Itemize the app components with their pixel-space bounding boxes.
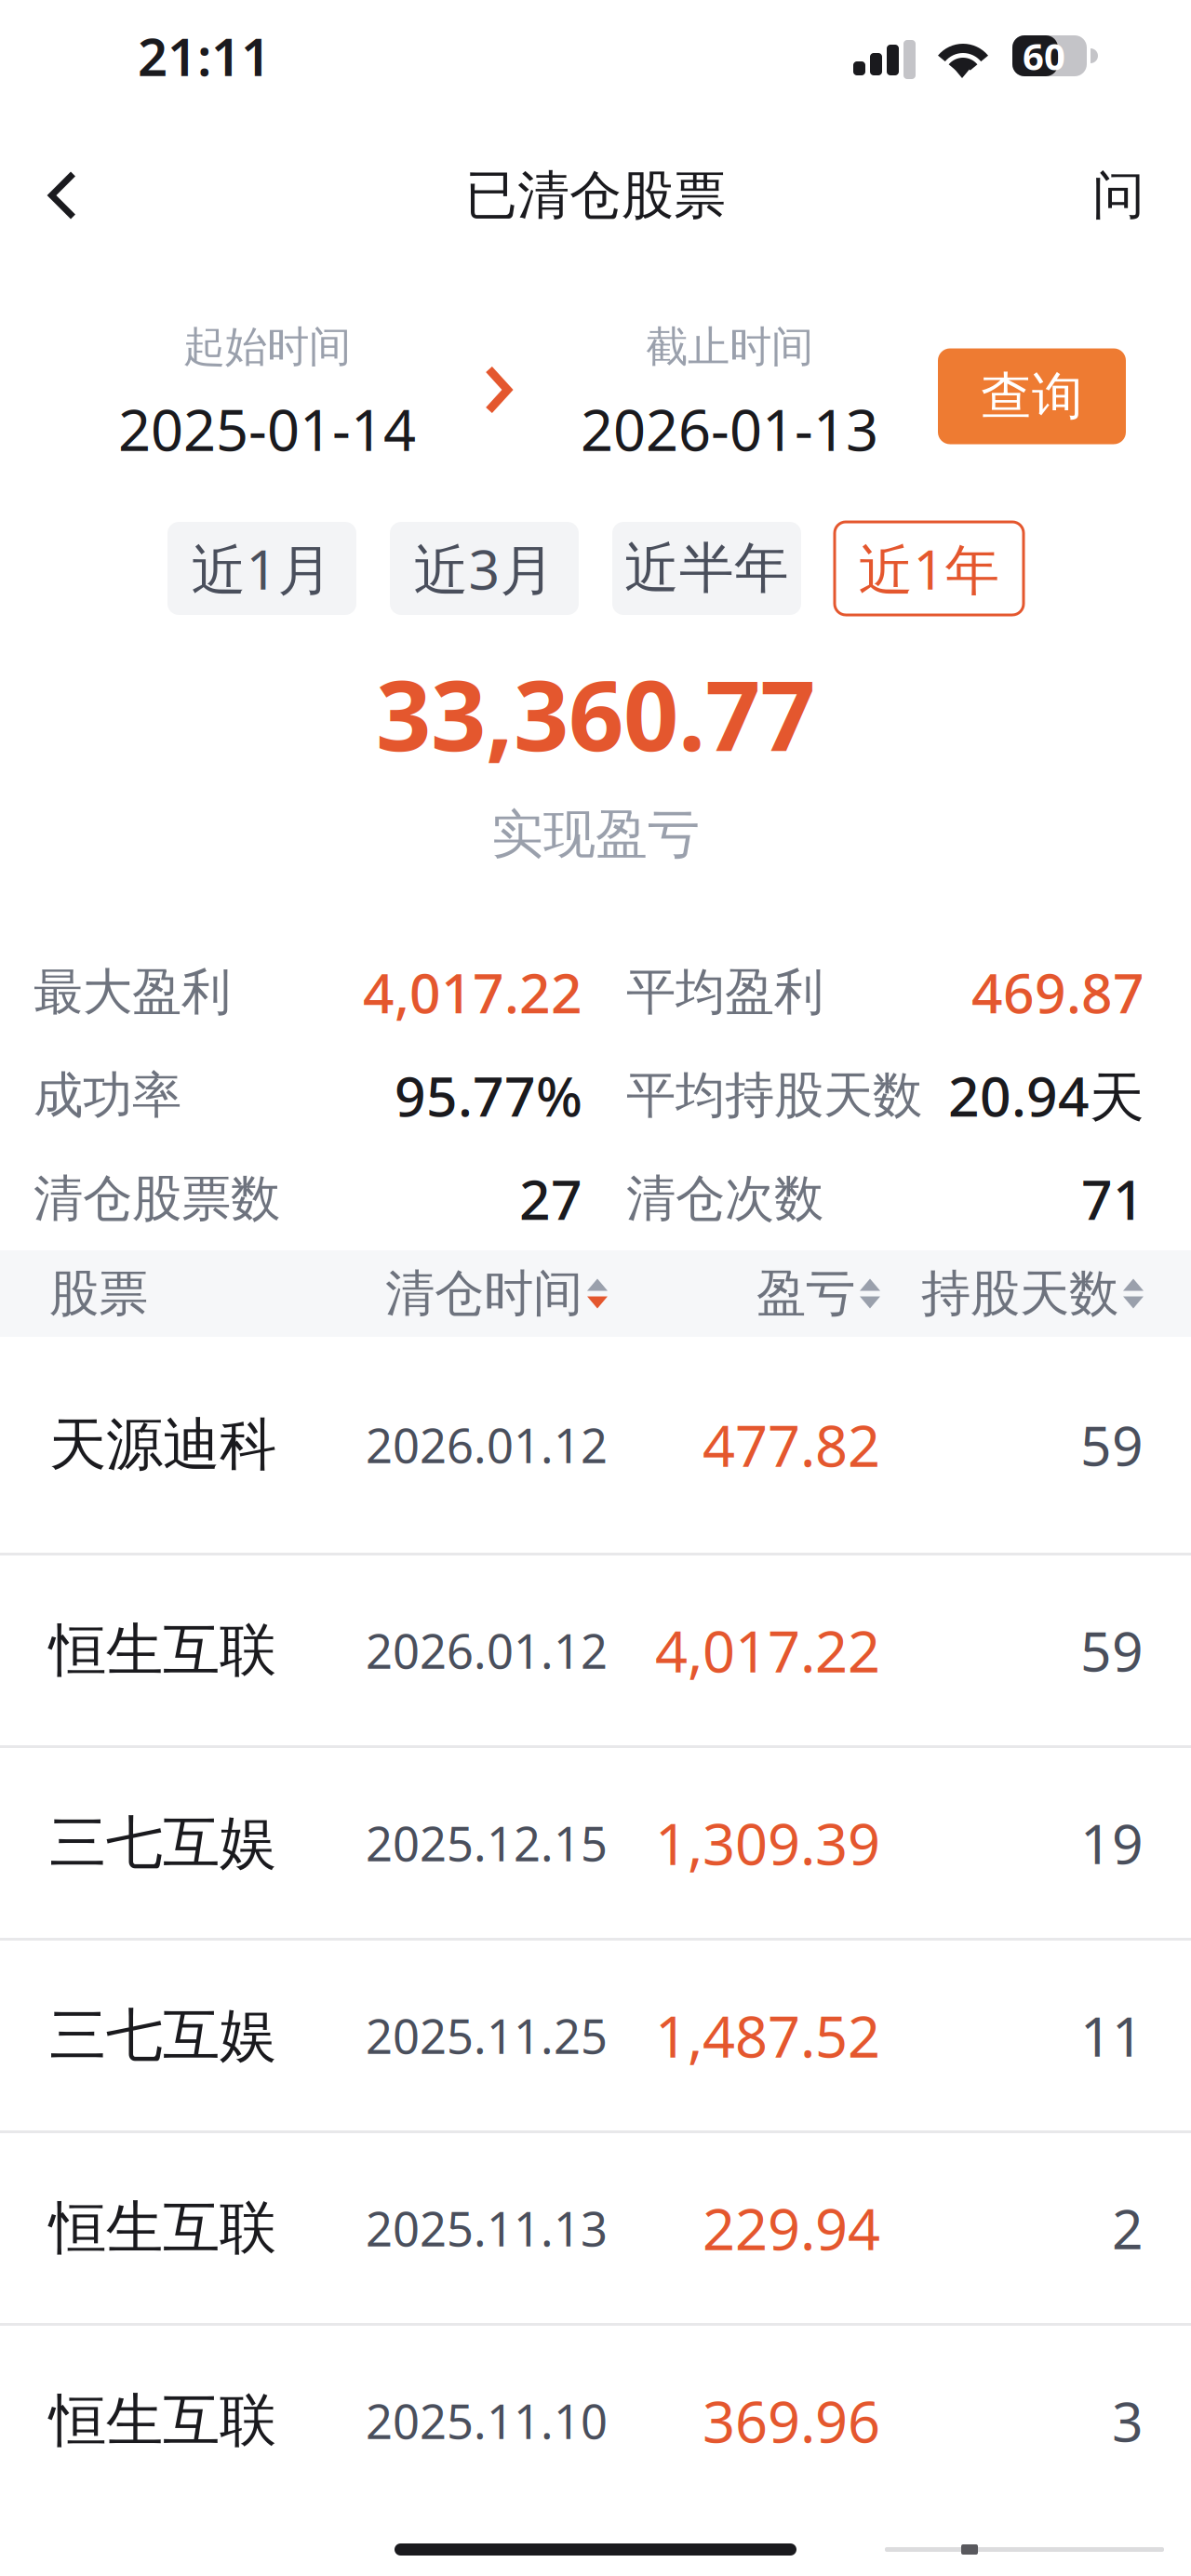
staticText: 33,360.77	[376, 649, 815, 778]
staticText: 问	[1092, 163, 1144, 227]
staticText: 59	[1080, 1408, 1144, 1481]
staticText: 清仓股票数	[33, 1168, 280, 1229]
staticText: 2026.01.12	[366, 1413, 608, 1476]
staticText: 最大盈利	[33, 962, 231, 1023]
button[interactable]: 问	[1067, 144, 1170, 247]
staticText: 平均盈利	[626, 962, 823, 1023]
button[interactable]: 截止时间	[571, 325, 888, 455]
button[interactable]: 返回	[11, 144, 114, 247]
staticText: 实现盈亏	[491, 802, 700, 866]
staticText: 持股天数	[921, 1263, 1118, 1324]
staticText: 27	[519, 1162, 582, 1235]
button[interactable]: 近3月	[390, 522, 579, 615]
button[interactable]: 三七互娱	[0, 1748, 1191, 1938]
staticText: 4,017.22	[655, 1612, 880, 1688]
button[interactable]: 近1月	[167, 522, 356, 615]
staticText: 469.87	[971, 956, 1144, 1028]
staticText: 3	[1112, 2384, 1144, 2457]
staticText: 21:11	[138, 21, 271, 90]
staticText: 已清仓股票	[465, 163, 726, 227]
staticText: 近半年	[624, 535, 789, 602]
staticText: 清仓时间	[385, 1263, 582, 1324]
staticText: 2	[1112, 2192, 1144, 2264]
staticText: 查询	[981, 365, 1083, 427]
staticText: 19	[1080, 1807, 1144, 1879]
button[interactable]: 天源迪科	[0, 1337, 1191, 1553]
staticText: 成功率	[33, 1065, 181, 1126]
staticText: 369.96	[703, 2383, 880, 2459]
staticText: 2025.11.10	[366, 2389, 608, 2452]
staticText: 2025.11.13	[366, 2197, 608, 2259]
button[interactable]: 持股天数	[880, 1250, 1144, 1337]
staticText: 229.94	[703, 2190, 880, 2266]
staticText: 清仓次数	[626, 1168, 823, 1229]
staticText: 三七互娱	[49, 2000, 276, 2070]
staticText: 近1年	[858, 532, 1000, 605]
staticText: 11	[1080, 1999, 1144, 2072]
button[interactable]: 恒生互联	[0, 1555, 1191, 1745]
staticText: 盈亏	[756, 1263, 855, 1324]
staticText: 60	[1023, 31, 1065, 80]
staticText: 起始时间	[183, 321, 351, 373]
button[interactable]: 清仓时间	[338, 1250, 608, 1337]
staticText: 恒生互联	[49, 2193, 276, 2263]
staticText: 近1月	[191, 532, 333, 605]
staticText: 20.94天	[948, 1059, 1144, 1132]
staticText: 1,309.39	[655, 1805, 880, 1881]
button[interactable]: 三七互娱	[0, 1941, 1191, 2130]
button[interactable]: 恒生互联	[0, 2133, 1191, 2323]
staticText: 2025-01-14	[118, 391, 416, 467]
staticText: 恒生互联	[49, 2386, 276, 2456]
button[interactable]: 近1年	[835, 522, 1024, 615]
button[interactable]: 盈亏	[608, 1250, 880, 1337]
button[interactable]: 近半年	[612, 522, 801, 615]
staticText: 477.82	[703, 1407, 880, 1483]
staticText: 近3月	[414, 532, 555, 605]
staticText: 天源迪科	[49, 1410, 276, 1480]
staticText: 2025.11.25	[366, 2004, 608, 2067]
button[interactable]: 恒生互联	[0, 2326, 1191, 2516]
staticText: 平均持股天数	[626, 1065, 922, 1126]
staticText: 71	[1081, 1162, 1144, 1235]
staticText: 4,017.22	[363, 956, 582, 1028]
staticText: 2026-01-13	[581, 391, 878, 467]
button[interactable]: 查询	[938, 348, 1126, 444]
staticText: 95.77%	[395, 1059, 582, 1132]
staticText: 2025.12.15	[366, 1812, 608, 1874]
staticText: 2026.01.12	[366, 1619, 608, 1682]
button[interactable]: 起始时间	[109, 325, 425, 455]
staticText: 截止时间	[646, 321, 813, 373]
staticText: 三七互娱	[49, 1808, 276, 1878]
staticText: 1,487.52	[655, 1998, 880, 2073]
staticText: 59	[1080, 1614, 1144, 1687]
staticText: 股票	[49, 1263, 148, 1324]
staticText: 恒生互联	[49, 1615, 276, 1685]
